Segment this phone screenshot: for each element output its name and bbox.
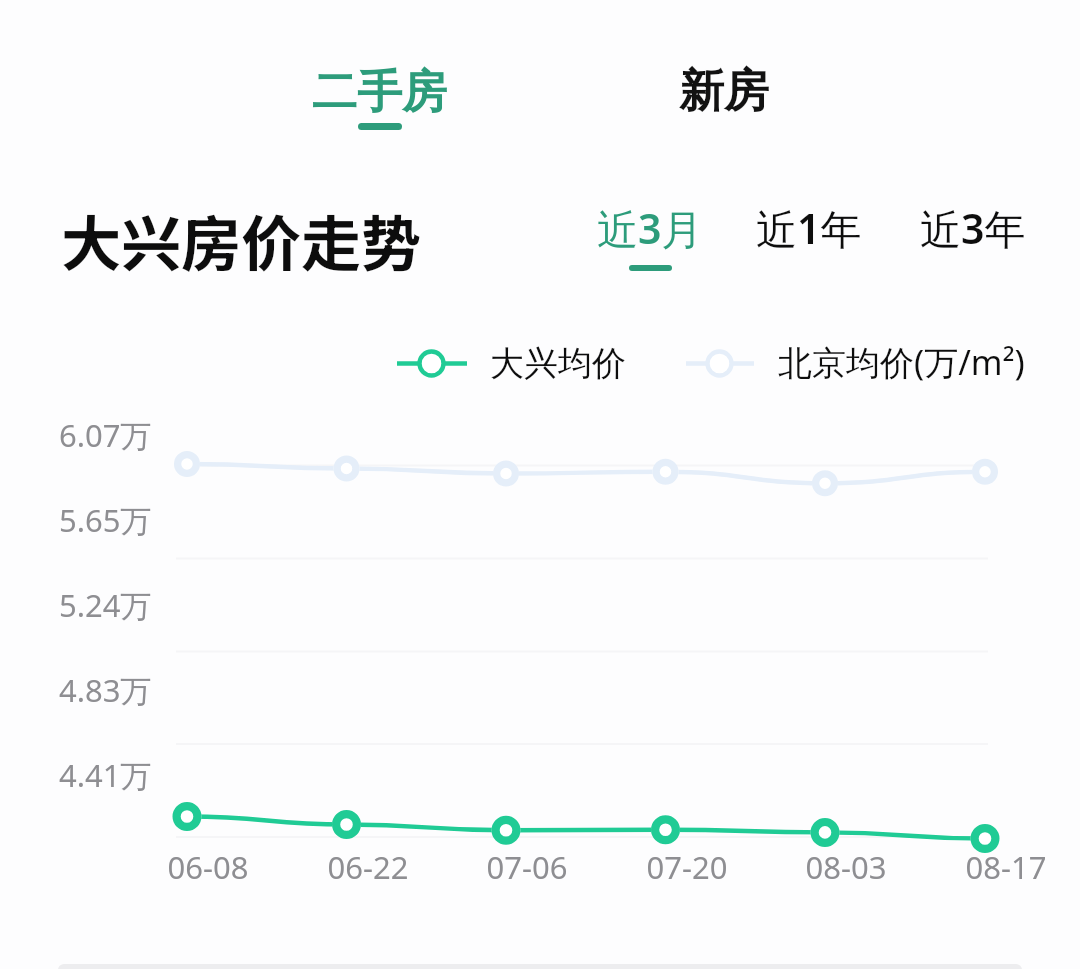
staticText: 近1年 (756, 200, 862, 256)
staticText: 二手房 (312, 64, 447, 121)
staticText: 5.24万 (59, 584, 152, 626)
staticText: 近3年 (920, 200, 1026, 256)
staticText: 08-17 (946, 846, 1066, 888)
staticText: 08-03 (786, 846, 906, 888)
staticText: 07-06 (467, 846, 587, 888)
staticText: 新房 (679, 63, 769, 120)
staticText: 4.83万 (59, 669, 152, 711)
button[interactable]: 近3年 (906, 190, 1040, 266)
button[interactable]: 新房 (665, 53, 783, 130)
staticText: 4.41万 (59, 754, 152, 796)
button[interactable]: 二手房 (298, 54, 461, 138)
staticText: 大兴均价 (490, 342, 626, 385)
staticText: 大兴房价走势 (61, 196, 421, 283)
staticText: 06-22 (308, 846, 428, 888)
button[interactable]: 北京均价(万/m²) (766, 333, 1037, 391)
staticText: 07-20 (627, 846, 747, 888)
staticText: 北京均价(万/m²) (778, 339, 1025, 385)
button[interactable]: 大兴均价 (478, 336, 638, 391)
button[interactable]: 近1年 (742, 190, 876, 266)
staticText: 5.65万 (59, 499, 152, 541)
button[interactable]: 近3月 (583, 190, 717, 272)
staticText: 近3月 (597, 200, 703, 256)
staticText: 06-08 (148, 846, 268, 888)
staticText: 6.07万 (59, 414, 152, 456)
